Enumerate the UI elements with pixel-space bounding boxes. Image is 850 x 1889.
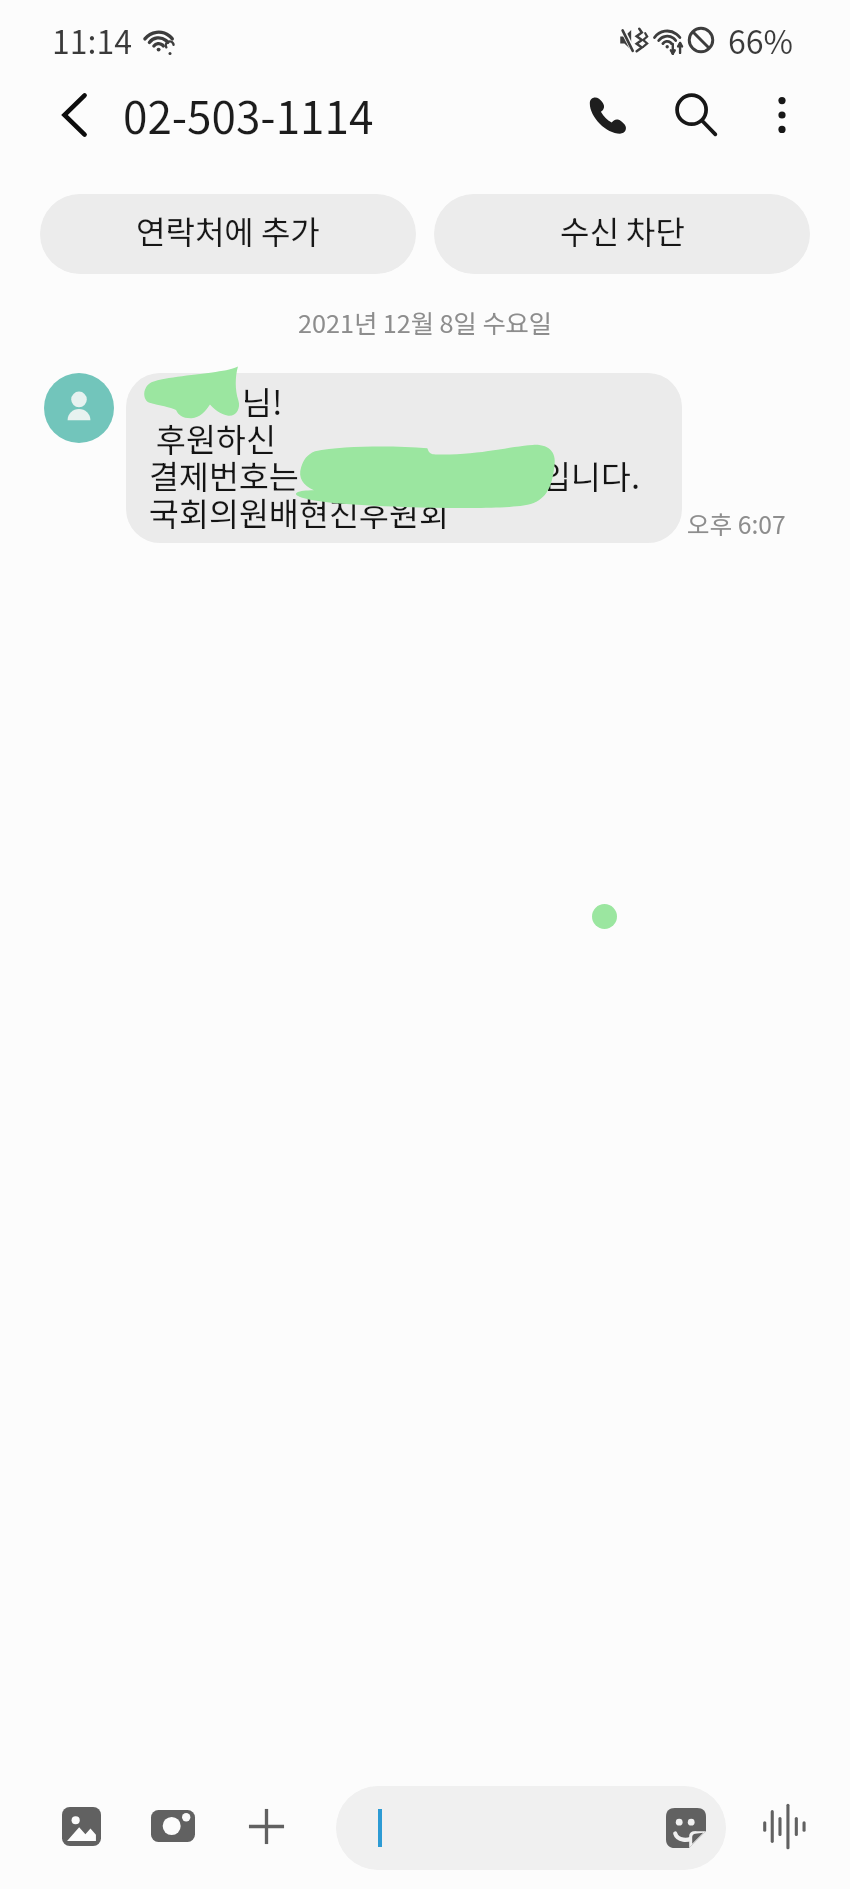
button[interactable]: Back [35, 75, 115, 155]
button[interactable]: Voice message [740, 1782, 828, 1870]
staticText: 66% [728, 17, 793, 63]
button[interactable]: Gallery [37, 1782, 125, 1870]
button[interactable]: Add attachment [222, 1782, 310, 1870]
button[interactable]: More options [742, 75, 822, 155]
staticText: 오후 6:07 [687, 505, 786, 541]
staticText: 님! [242, 377, 283, 424]
staticText: 국회의원배현진후원회 [149, 488, 449, 535]
staticText: 11:14 [52, 17, 132, 63]
button[interactable]: Camera [129, 1782, 217, 1870]
staticText: 수신 차단 [560, 207, 685, 253]
staticText: 2021년 12월 8일 수요일 [298, 304, 552, 340]
button[interactable]: Call [568, 75, 648, 155]
staticText: 후원하신 [156, 414, 276, 461]
staticText: 결제번호는 [149, 451, 299, 498]
staticText: 연락처에 추가 [136, 207, 320, 253]
button[interactable]: 02-503-1114 [123, 83, 374, 147]
button[interactable]: Search [656, 75, 736, 155]
button[interactable]: 님! [126, 373, 682, 543]
button[interactable]: 연락처에 추가 [40, 194, 416, 274]
button[interactable]: Stickers [656, 1798, 716, 1858]
button[interactable]: 수신 차단 [434, 194, 810, 274]
staticText: 입니다. [541, 451, 641, 498]
button[interactable]: Stickers [336, 1786, 726, 1870]
